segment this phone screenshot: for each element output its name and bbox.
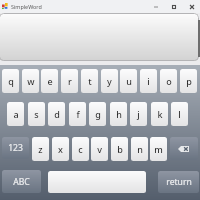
staticText: k	[157, 108, 163, 120]
staticText: r	[68, 75, 72, 87]
button[interactable]: y	[101, 69, 118, 93]
button[interactable]: l	[171, 102, 188, 126]
button[interactable]: 123	[2, 137, 29, 159]
button[interactable]: x	[52, 137, 69, 161]
staticText: SimpleWord	[11, 3, 42, 10]
button[interactable]: c	[72, 137, 89, 161]
button[interactable]: i	[140, 69, 157, 93]
staticText: c	[78, 143, 83, 155]
button[interactable]: o	[160, 69, 177, 93]
button[interactable]: f	[69, 102, 86, 126]
staticText: z	[38, 143, 43, 155]
staticText: n	[137, 143, 143, 155]
staticText: s	[34, 108, 39, 120]
button[interactable]: q	[2, 69, 19, 93]
staticText: m	[154, 143, 163, 155]
button[interactable]: w	[22, 69, 39, 93]
staticText: b	[117, 143, 123, 155]
button[interactable]: Maximize	[165, 0, 183, 13]
button[interactable]: r	[61, 69, 78, 93]
button[interactable]: s	[28, 102, 45, 126]
staticText: l	[178, 108, 181, 120]
staticText: v	[97, 143, 102, 155]
button[interactable]: ABC	[2, 170, 41, 193]
button[interactable]	[0, 13, 199, 61]
staticText: a	[13, 108, 19, 120]
staticText: j	[137, 108, 140, 120]
button[interactable]: m	[150, 137, 167, 161]
staticText: h	[116, 108, 122, 120]
staticText: y	[107, 75, 112, 87]
staticText: ABC	[13, 176, 30, 188]
staticText: w	[27, 75, 35, 87]
button[interactable]: Space	[48, 171, 146, 193]
button[interactable]: t	[81, 69, 98, 93]
button[interactable]: h	[110, 102, 127, 126]
staticText: i	[147, 75, 150, 87]
staticText: u	[126, 75, 132, 87]
button[interactable]: p	[180, 69, 197, 93]
button[interactable]: d	[48, 102, 65, 126]
button[interactable]: Minimize	[147, 0, 165, 13]
button[interactable]: Close	[183, 0, 200, 13]
staticText: q	[8, 75, 14, 87]
staticText: d	[54, 108, 60, 120]
staticText: f	[76, 108, 80, 120]
button[interactable]: n	[131, 137, 148, 161]
button[interactable]: z	[32, 137, 49, 161]
staticText: o	[166, 75, 172, 87]
staticText: t	[88, 75, 92, 87]
button[interactable]: return	[158, 171, 199, 193]
button[interactable]: k	[151, 102, 168, 126]
button[interactable]: e	[41, 69, 58, 93]
button[interactable]: u	[120, 69, 137, 93]
button[interactable]: b	[111, 137, 128, 161]
button[interactable]: v	[91, 137, 108, 161]
staticText: 123	[8, 142, 23, 154]
staticText: e	[47, 75, 53, 87]
button[interactable]: a	[7, 102, 24, 126]
button[interactable]: g	[89, 102, 106, 126]
staticText: g	[95, 108, 101, 120]
button[interactable]: Backspace	[170, 137, 198, 160]
staticText: p	[186, 75, 192, 87]
staticText: return	[166, 176, 192, 188]
button[interactable]: j	[130, 102, 147, 126]
staticText: x	[58, 143, 63, 155]
